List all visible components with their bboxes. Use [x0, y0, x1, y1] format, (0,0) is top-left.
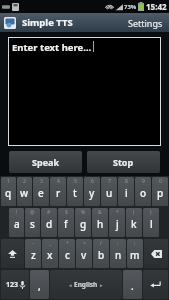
button[interactable]: 4 [50, 177, 66, 206]
staticText: c [65, 248, 70, 262]
button[interactable]: 5 [67, 177, 83, 206]
staticText: k [131, 217, 137, 231]
staticText: e [38, 186, 44, 200]
button[interactable]: Enter [143, 270, 168, 299]
button[interactable]: _ [42, 239, 58, 268]
button[interactable]: 9 [135, 177, 151, 206]
staticText: + [66, 240, 69, 247]
staticText: 8 [125, 178, 128, 185]
button[interactable]: ) [143, 208, 159, 237]
staticText: 5 [74, 178, 77, 185]
button[interactable]: * [109, 208, 125, 237]
staticText: & [98, 209, 102, 216]
staticText: . [131, 279, 134, 293]
staticText: r [56, 186, 61, 200]
button[interactable]: 1 [1, 177, 16, 206]
staticText: b [98, 248, 105, 262]
button[interactable]: 7 [101, 177, 117, 206]
staticText: w [20, 186, 29, 200]
staticText: p [157, 186, 164, 200]
staticText: - [32, 240, 34, 247]
staticText: 6 [91, 178, 94, 185]
staticText: x [47, 248, 53, 262]
button[interactable]: Enter text here... [8, 37, 161, 146]
staticText: * [116, 209, 119, 216]
button[interactable]: Backspace [144, 239, 168, 268]
staticText: 123 [6, 280, 19, 290]
button[interactable]: , [30, 270, 49, 299]
staticText: = [83, 240, 86, 247]
staticText: Settings [128, 17, 163, 29]
button[interactable]: Numbers and voice input [1, 270, 29, 299]
button[interactable]: + [59, 239, 75, 268]
staticText: Enter text here... [12, 41, 92, 54]
staticText: ( [133, 209, 135, 216]
staticText: Simple TTS [22, 16, 73, 29]
button[interactable]: ; [127, 239, 143, 268]
staticText: % [81, 209, 86, 216]
button[interactable]: $ [58, 208, 74, 237]
staticText: ) [150, 209, 152, 216]
staticText: s [30, 217, 35, 231]
staticText: 9 [142, 178, 145, 185]
staticText: u [106, 186, 113, 200]
staticText: 15:42 [146, 1, 167, 12]
staticText: English [74, 280, 98, 289]
staticText: Stop [113, 156, 134, 168]
staticText: 73% [124, 3, 137, 11]
staticText: / [100, 240, 102, 247]
button[interactable]: & [92, 208, 108, 237]
staticText: $ [65, 209, 68, 216]
button[interactable]: 8 [118, 177, 134, 206]
button[interactable]: 0 [152, 177, 168, 206]
staticText: o [140, 186, 147, 200]
button[interactable]: / [93, 239, 109, 268]
staticText: ▸ [100, 282, 103, 288]
staticText: 2 [23, 178, 26, 185]
staticText: t [73, 186, 77, 200]
button[interactable]: Speak [9, 151, 82, 173]
button[interactable]: : [110, 239, 126, 268]
staticText: # [47, 209, 51, 216]
staticText: y [89, 186, 95, 200]
staticText: m [130, 248, 140, 262]
staticText: z [31, 248, 36, 262]
button[interactable]: @ [25, 208, 40, 237]
staticText: l [150, 217, 153, 231]
button[interactable]: ◂ [50, 270, 122, 299]
button[interactable]: . [123, 270, 142, 299]
button[interactable]: % [75, 208, 91, 237]
button[interactable]: # [41, 208, 57, 237]
button[interactable]: Settings [122, 13, 169, 32]
staticText: , [38, 279, 41, 293]
staticText: : [117, 240, 119, 247]
staticText: a [14, 217, 20, 231]
button[interactable]: 2 [17, 177, 32, 206]
staticText: _ [49, 240, 52, 247]
staticText: j [116, 217, 119, 231]
staticText: Speak [32, 156, 59, 168]
staticText: i [125, 186, 128, 200]
staticText: q [5, 186, 12, 200]
staticText: 0 [159, 178, 162, 185]
button[interactable]: 3 [33, 177, 49, 206]
staticText: 4 [57, 178, 60, 185]
staticText: h [97, 217, 104, 231]
button[interactable]: - [25, 239, 41, 268]
button[interactable]: ( [126, 208, 142, 237]
staticText: n [115, 248, 122, 262]
staticText: g [80, 217, 87, 231]
staticText: f [64, 217, 68, 231]
button[interactable]: Stop [87, 151, 160, 173]
staticText: ! [16, 209, 18, 216]
staticText: d [46, 217, 53, 231]
button[interactable]: ! [9, 208, 24, 237]
staticText: v [81, 248, 87, 262]
staticText: 3 [40, 178, 43, 185]
staticText: ; [134, 240, 136, 247]
staticText: 7 [108, 178, 111, 185]
staticText: @ [30, 209, 35, 216]
button[interactable]: = [76, 239, 92, 268]
button[interactable]: 6 [84, 177, 100, 206]
button[interactable]: Shift [1, 239, 24, 268]
